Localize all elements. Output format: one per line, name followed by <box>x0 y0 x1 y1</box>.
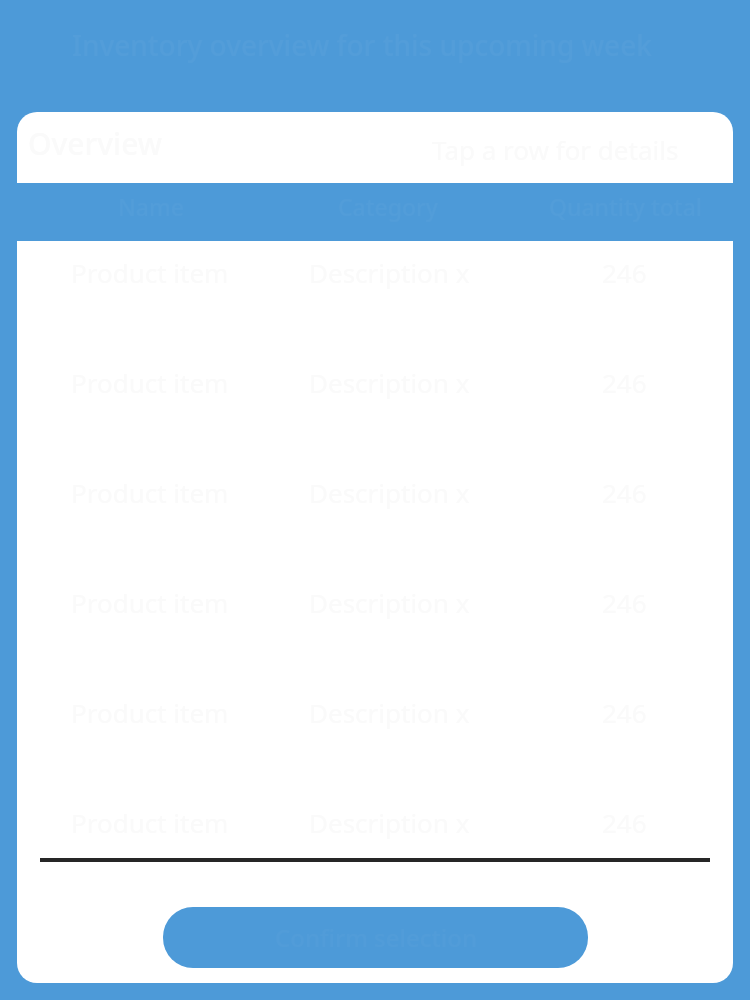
button[interactable]: Overview <box>17 112 733 183</box>
button[interactable]: Confirm selection <box>163 907 588 968</box>
button[interactable]: Product item <box>17 791 733 901</box>
